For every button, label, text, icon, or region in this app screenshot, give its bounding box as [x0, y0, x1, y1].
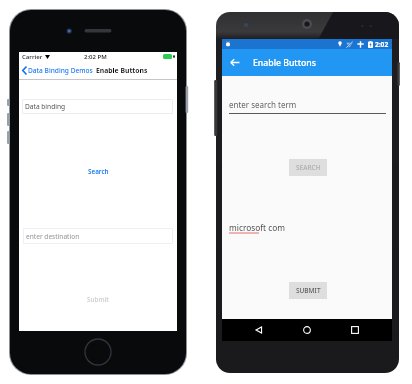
staticText: Data binding	[25, 102, 66, 111]
staticText: enter search term	[229, 99, 297, 110]
button[interactable]: Search	[19, 165, 177, 177]
staticText: Search	[88, 167, 109, 176]
button[interactable]: Data binding	[22, 99, 173, 114]
button[interactable]: SEARCH	[289, 159, 327, 176]
staticText: SEARCH	[296, 163, 321, 172]
button[interactable]: SUBMIT	[289, 282, 327, 299]
button[interactable]: Back	[222, 49, 248, 76]
staticText: enter destination	[26, 232, 80, 241]
staticText: Submit	[87, 295, 109, 304]
button[interactable]: Back	[248, 319, 270, 341]
staticText: 2:02 PM	[84, 53, 107, 61]
staticText: Carrier	[22, 53, 43, 61]
button[interactable]: enter destination	[23, 228, 173, 244]
staticText: microsoft com	[229, 222, 285, 233]
staticText: 2:02	[375, 40, 389, 49]
staticText: Enable Buttons	[253, 57, 316, 69]
button[interactable]: Home	[296, 319, 318, 341]
button[interactable]: Data Binding Demos	[22, 66, 93, 75]
staticText: SUBMIT	[296, 286, 321, 295]
staticText: Data Binding Demos	[28, 66, 93, 75]
staticText: Enable Buttons	[96, 66, 148, 75]
button[interactable]: Recent apps	[344, 319, 366, 341]
button[interactable]: Submit	[19, 293, 177, 305]
button[interactable]: enter search term	[229, 99, 386, 114]
